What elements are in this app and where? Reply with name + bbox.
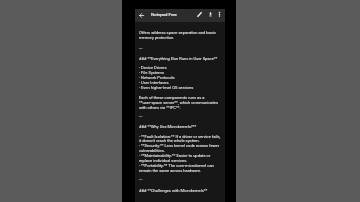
staticText: - **Portability:** The core-microkernel …: [139, 163, 214, 168]
staticText: - Device Drivers: [139, 65, 167, 70]
staticText: - Even higher-level OS services: [139, 85, 194, 90]
staticText: Each of these components runs as a: [139, 95, 205, 100]
staticText: Notepad Free: [151, 12, 177, 17]
staticText: remain the same across hardware.: [139, 168, 202, 173]
staticText: - Network Protocols: [139, 75, 175, 80]
button[interactable]: Voice input: [206, 10, 215, 19]
staticText: **user-space server**, which communicate…: [139, 100, 219, 105]
staticText: - **Maintainability:** Easier to update …: [139, 153, 211, 158]
staticText: ---: [139, 46, 143, 51]
staticText: - File Systems: [139, 70, 164, 75]
staticText: ### **Why Use Microkernels?**: [139, 124, 197, 129]
staticText: - User Interfaces: [139, 80, 169, 85]
staticText: Offers address space separation and basi…: [139, 30, 216, 35]
staticText: - **Fault Isolation:** If a driver or se…: [139, 134, 221, 139]
button[interactable]: Back: [137, 11, 146, 20]
staticText: ---: [139, 177, 143, 182]
staticText: vulnerabilities.: [139, 148, 165, 153]
staticText: - **Security:** Less kernel code means f…: [139, 143, 220, 148]
button[interactable]: Edit: [195, 10, 204, 19]
staticText: with others via **IPC**.: [139, 105, 181, 110]
staticText: memory protection.: [139, 35, 175, 40]
button[interactable]: More options: [215, 10, 224, 19]
button[interactable]: Back: [135, 9, 225, 22]
staticText: replace individual services.: [139, 158, 188, 163]
staticText: ### **Challenges with Microkernels**: [139, 188, 208, 193]
staticText: it doesn't crash the whole system.: [139, 138, 200, 143]
staticText: ### **Everything Else Runs in User Space…: [139, 56, 218, 61]
staticText: ---: [139, 114, 143, 119]
